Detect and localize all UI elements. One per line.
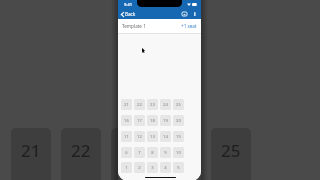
button[interactable]: 23 [111,128,151,180]
button[interactable]: Info [190,9,199,18]
staticText: 10 [176,150,181,156]
staticText: 9:41 [124,2,132,7]
staticText: 7 [138,150,141,156]
button[interactable]: 22 [134,99,145,110]
staticText: 5 [177,165,180,171]
button[interactable]: 23 [147,99,158,110]
staticText: Back [125,11,136,17]
staticText: 19 [163,118,168,124]
staticText: 9 [164,150,167,156]
button[interactable]: 24 [161,128,201,180]
staticText: 4 [164,165,167,171]
staticText: 6 [125,150,128,156]
staticText: Available [123,163,140,168]
button[interactable]: 5 [173,162,184,173]
button[interactable]: 7 [134,147,145,158]
staticText: 22 [137,102,142,108]
staticText: 1 [125,165,128,171]
button[interactable]: 8 [147,147,158,158]
staticText: Available [173,163,190,168]
button[interactable]: 6 [121,147,132,158]
staticText: 23 [150,102,155,108]
staticText: 12 [137,134,142,140]
button[interactable]: 20 [173,115,184,126]
button[interactable]: 11 [121,131,132,142]
staticText: 18 [150,118,155,124]
staticText: 25 [221,139,241,162]
button[interactable]: 12 [134,131,145,142]
staticText: 11 [124,134,129,140]
staticText: 3 [151,165,154,171]
button[interactable]: 25 [211,128,251,180]
staticText: 24 [163,102,168,108]
staticText: 22 [71,139,91,162]
staticText: 17 [137,118,142,124]
button[interactable]: 14 [160,131,171,142]
button[interactable]: 4 [160,162,171,173]
staticText: 14 [163,134,168,140]
button[interactable]: Template 1 [118,19,201,33]
staticText: i [194,10,196,17]
button[interactable]: 16 [121,115,132,126]
staticText: 15 [176,134,181,140]
button[interactable]: 2 [134,162,145,173]
staticText: 24 [171,139,191,162]
button[interactable]: 19 [160,115,171,126]
button[interactable]: 17 [134,115,145,126]
button[interactable]: 21 [11,128,51,180]
staticText: 16 [124,118,129,124]
button[interactable]: 22 [61,128,101,180]
staticText: 8 [151,150,154,156]
button[interactable]: 18 [147,115,158,126]
staticText: 2 [138,165,141,171]
button[interactable]: 25 [173,99,184,110]
button[interactable]: 3 [147,162,158,173]
staticText: 21 [124,102,129,108]
button[interactable]: 10 [173,147,184,158]
button[interactable]: 9 [160,147,171,158]
button[interactable]: Camera [180,9,189,18]
button[interactable]: 1 [121,162,132,173]
button[interactable]: 21 [121,99,132,110]
staticText: +1 seat [181,23,197,29]
button[interactable]: 15 [173,131,184,142]
button[interactable]: 13 [147,131,158,142]
staticText: 13 [150,134,155,140]
staticText: Template 1 [122,23,146,29]
staticText: 23 [121,139,141,162]
staticText: 21 [21,139,41,162]
button[interactable]: 24 [160,99,171,110]
staticText: 25 [176,102,181,108]
button[interactable]: Back [121,11,136,17]
staticText: 20 [176,118,181,124]
